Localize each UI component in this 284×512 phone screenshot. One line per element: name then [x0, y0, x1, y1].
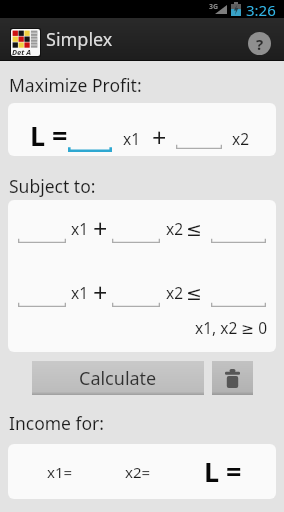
staticText: ≤ — [186, 218, 202, 240]
staticText: x1 — [71, 282, 89, 303]
staticText: ≤ — [186, 282, 202, 304]
staticText: Income for: — [9, 411, 105, 435]
staticText: x1, x2 ≥ 0 — [195, 317, 268, 338]
staticText: L = — [30, 117, 68, 154]
staticText: Simplex — [46, 27, 113, 52]
staticText: + — [93, 275, 108, 309]
staticText: Maximize Profit: — [9, 73, 142, 97]
staticText: x1 — [123, 128, 141, 149]
staticText: 3G — [209, 2, 219, 12]
staticText: x2= — [125, 462, 151, 482]
staticText: + — [93, 211, 108, 245]
staticText: ? — [256, 34, 264, 54]
staticText: x2 — [232, 128, 250, 149]
staticText: Subject to: — [9, 174, 96, 198]
staticText: x2 — [166, 218, 184, 239]
staticText: L = — [204, 453, 242, 490]
staticText: Det A — [12, 47, 31, 57]
staticText: x1 — [71, 218, 89, 239]
staticText: 3:26 — [246, 0, 276, 18]
staticText: + — [152, 120, 167, 154]
button[interactable]: Calculate — [32, 361, 204, 395]
staticText: x2 — [166, 282, 184, 303]
staticText: x1= — [47, 462, 73, 482]
button[interactable]: ? — [248, 32, 271, 55]
button[interactable] — [212, 361, 253, 395]
staticText: Calculate — [79, 366, 157, 391]
